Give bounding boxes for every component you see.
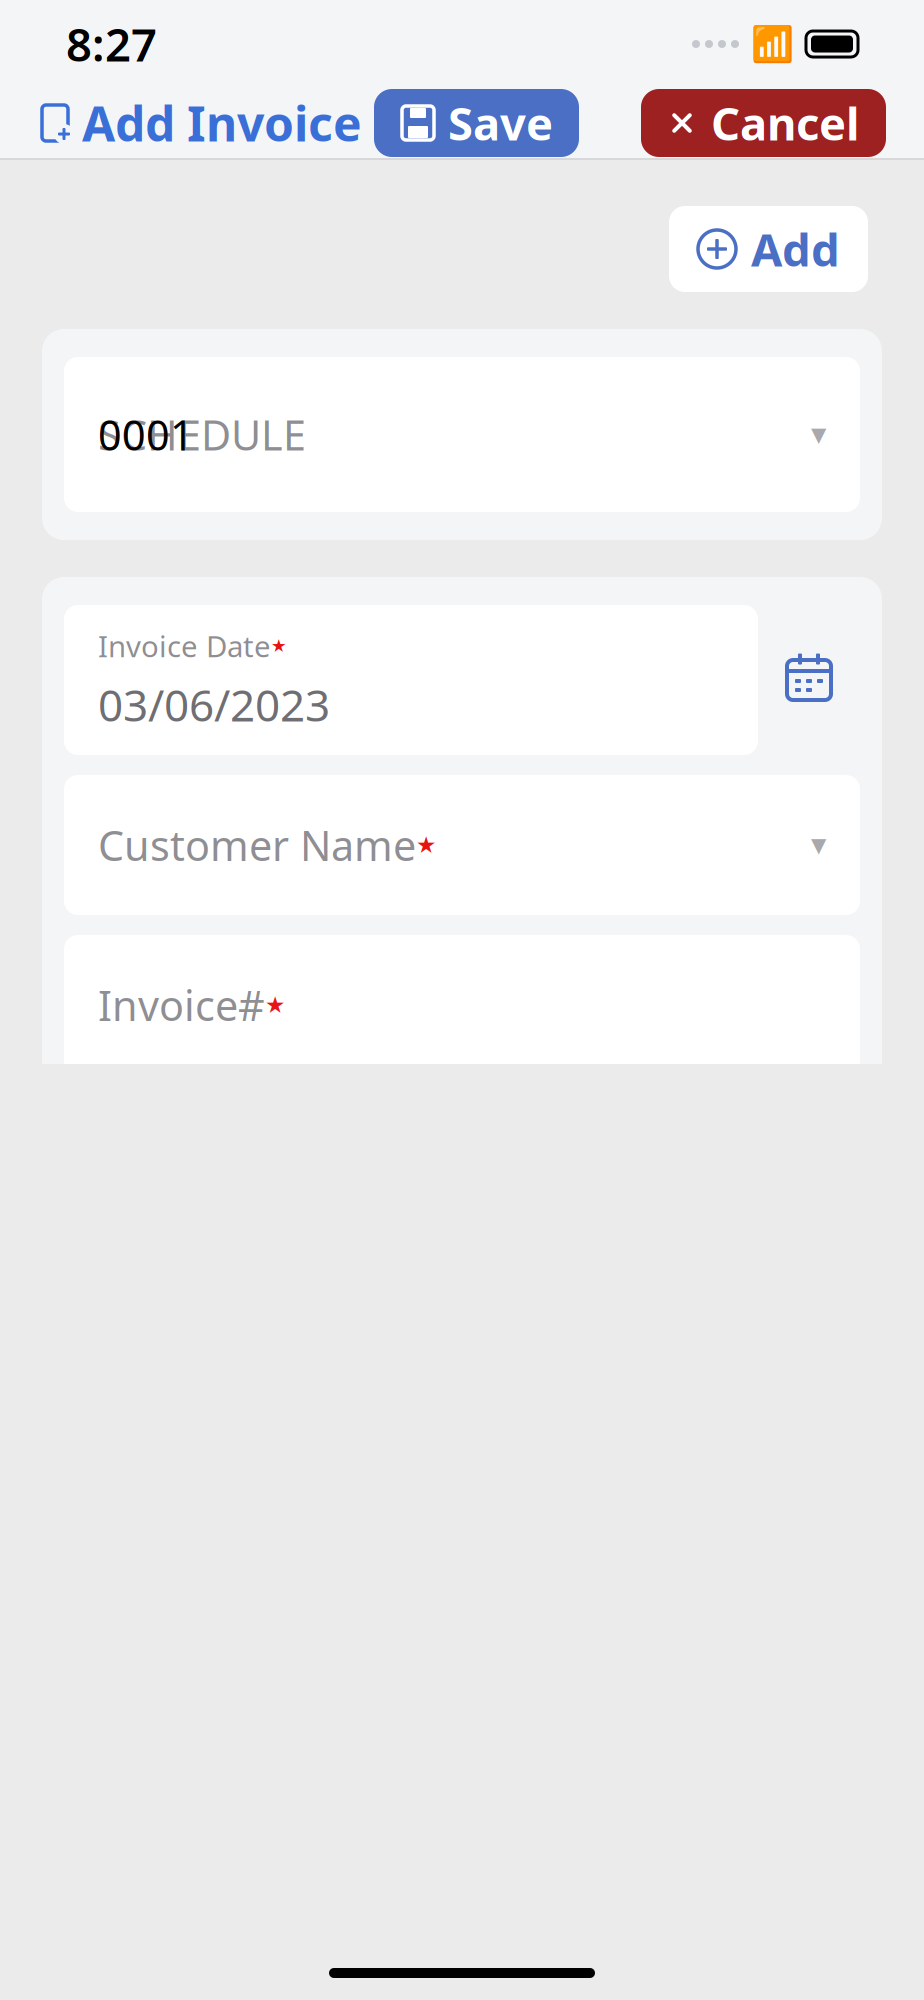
staticText: ★ — [265, 992, 285, 1018]
button[interactable]: Cancel — [641, 89, 886, 157]
button[interactable]: Invoice Date — [64, 605, 758, 755]
staticText: Save — [448, 93, 553, 153]
button[interactable]: SCHEDULE — [64, 357, 860, 512]
staticText: SCHEDULE — [98, 407, 306, 462]
staticText: Add Invoice — [82, 91, 362, 155]
button[interactable]: Invoice# — [64, 935, 860, 1075]
staticText: Add — [751, 219, 840, 279]
staticText: Invoice Date — [98, 626, 271, 665]
staticText: ★ — [271, 636, 287, 656]
staticText: ▼ — [811, 423, 826, 446]
staticText: 03/06/2023 — [98, 675, 330, 734]
button[interactable]: Save — [374, 89, 579, 157]
staticText: 8:27 — [66, 14, 157, 74]
staticText: Invoice# — [98, 978, 265, 1032]
button[interactable]: Add Invoice — [38, 85, 362, 161]
button[interactable]: Add — [669, 206, 868, 292]
staticText: ★ — [416, 832, 436, 858]
staticText: ▼ — [811, 834, 826, 856]
button[interactable]: Pick date — [758, 605, 860, 755]
staticText: 0001 — [98, 407, 194, 462]
staticText: Customer Name — [98, 818, 416, 872]
staticText: Cancel — [711, 93, 860, 153]
button[interactable]: Customer Name — [64, 775, 860, 915]
staticText: 📶 — [751, 24, 794, 64]
